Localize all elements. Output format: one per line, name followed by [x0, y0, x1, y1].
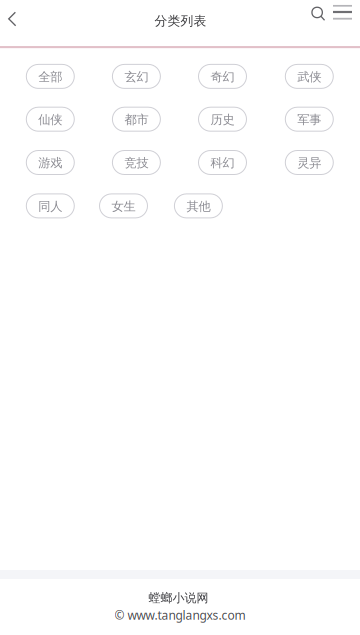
button[interactable]: 都市 — [112, 107, 160, 131]
button[interactable]: 灵异 — [285, 150, 333, 174]
staticText: 武侠 — [297, 69, 321, 85]
staticText: 分类列表 — [154, 13, 206, 29]
staticText: © www.tanglangxs.com — [114, 607, 245, 623]
staticText: 都市 — [124, 112, 148, 127]
button[interactable]: 游戏 — [26, 150, 74, 174]
button[interactable]: 玄幻 — [112, 64, 160, 88]
staticText: 游戏 — [38, 155, 62, 171]
button[interactable]: Back — [0, 0, 29, 40]
button[interactable]: 奇幻 — [198, 64, 246, 88]
button[interactable]: 其他 — [174, 194, 222, 218]
staticText: 仙侠 — [38, 112, 62, 127]
button[interactable]: 军事 — [285, 107, 333, 131]
staticText: 科幻 — [210, 155, 234, 171]
staticText: 全部 — [38, 69, 62, 85]
button[interactable]: Search — [306, 0, 330, 30]
button[interactable]: 女生 — [99, 194, 147, 218]
button[interactable]: 武侠 — [285, 64, 333, 88]
staticText: 奇幻 — [210, 69, 234, 85]
button[interactable]: Menu — [330, 0, 354, 29]
button[interactable]: 历史 — [198, 107, 246, 131]
staticText: 螳螂小说网 — [148, 590, 208, 605]
staticText: 军事 — [297, 112, 321, 127]
staticText: 女生 — [111, 199, 135, 214]
staticText: 其他 — [186, 199, 210, 214]
staticText: 灵异 — [297, 155, 321, 171]
staticText: 玄幻 — [124, 69, 148, 85]
button[interactable]: 全部 — [26, 64, 74, 88]
button[interactable]: 竞技 — [112, 150, 160, 174]
button[interactable]: 同人 — [26, 194, 74, 218]
button[interactable]: 科幻 — [198, 150, 246, 174]
staticText: 历史 — [210, 112, 234, 127]
staticText: 同人 — [38, 199, 62, 214]
button[interactable]: 仙侠 — [26, 107, 74, 131]
staticText: 竞技 — [124, 155, 148, 171]
